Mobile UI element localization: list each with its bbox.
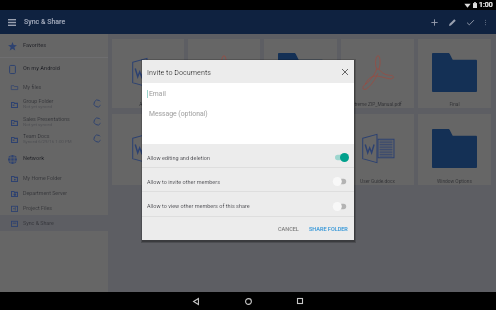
staticText: Message (optional) [149,110,208,118]
staticText: Not yet synced [23,104,52,109]
button[interactable]: Recent apps [274,292,326,310]
staticText: Email [149,90,166,98]
button[interactable]: On my Android [0,58,108,79]
button[interactable]: Allow to view other members of this shar… [142,192,354,216]
staticText: Group Folder [23,98,54,104]
button[interactable]: Allow to invite other members [142,168,354,191]
staticText: Not yet synced [23,122,52,127]
button[interactable]: My Home Folder [0,170,108,186]
staticText: CANCEL [278,226,299,232]
staticText: Department Server [23,190,68,196]
button[interactable]: Add [425,11,443,33]
staticText: My Home Folder [23,175,62,181]
staticText: treme ZIP_Manual.pdf [354,102,402,108]
staticText: Allow to invite other members [147,179,220,185]
staticText: Allow editing and deletion [147,155,210,161]
button[interactable]: Group Folder [0,95,108,112]
button[interactable]: treme ZIP_Manual.pdf [341,39,414,108]
button[interactable]: Network [0,148,108,169]
staticText: 1:00 [479,1,493,9]
button[interactable]: User Guide.docx [341,114,414,185]
button[interactable]: Open navigation drawer [4,11,20,33]
button[interactable]: Select all [462,11,478,33]
staticText: Network [23,155,45,162]
staticText: jwithe [218,179,231,185]
staticText: Active Di [139,102,158,108]
staticText: On my Android [23,65,60,72]
staticText: Final [449,102,460,108]
button[interactable]: SHARE FOLDER [304,223,353,235]
button[interactable]: Allow editing and deletion [142,144,354,167]
button[interactable]: Close [338,65,352,79]
button[interactable]: Final [418,39,491,108]
staticText: Sync & Share [24,18,66,26]
staticText: Favorites [23,42,47,49]
staticText: Synced 6/29/16 1:00 PM [23,139,72,144]
staticText: Sales Presentations [23,116,70,122]
button[interactable]: Sales Presentations [0,113,108,130]
staticText: Team Docs [23,133,50,139]
staticText: Project Files [23,205,53,211]
button[interactable]: Department Server [0,185,108,201]
button[interactable]: Window Options [418,114,491,185]
button[interactable] [264,39,337,108]
button[interactable]: Edit [443,11,462,33]
button[interactable] [188,39,260,108]
button[interactable] [112,114,184,185]
button[interactable]: Favorites [0,35,108,56]
button[interactable]: Project Files [0,200,108,216]
staticText: Sync & Share [23,220,54,226]
staticText: My files [23,84,42,90]
button[interactable]: Active Di [112,39,184,108]
staticText: User Guide.docx [360,179,395,185]
staticText: Allow to view other members of this shar… [147,203,250,209]
button[interactable]: Back [170,292,222,310]
button[interactable]: jwithe [188,114,260,185]
button[interactable]: CANCEL [273,223,304,235]
button[interactable] [264,114,337,185]
staticText: Window Options [437,179,472,185]
staticText: Invite to Documents [147,68,211,76]
button[interactable]: More options [478,11,492,33]
staticText: SHARE FOLDER [309,226,348,232]
button[interactable]: Sync & Share [0,215,108,231]
button[interactable]: My files [0,79,108,95]
button[interactable]: Team Docs [0,130,108,147]
button[interactable]: Home [222,292,274,310]
